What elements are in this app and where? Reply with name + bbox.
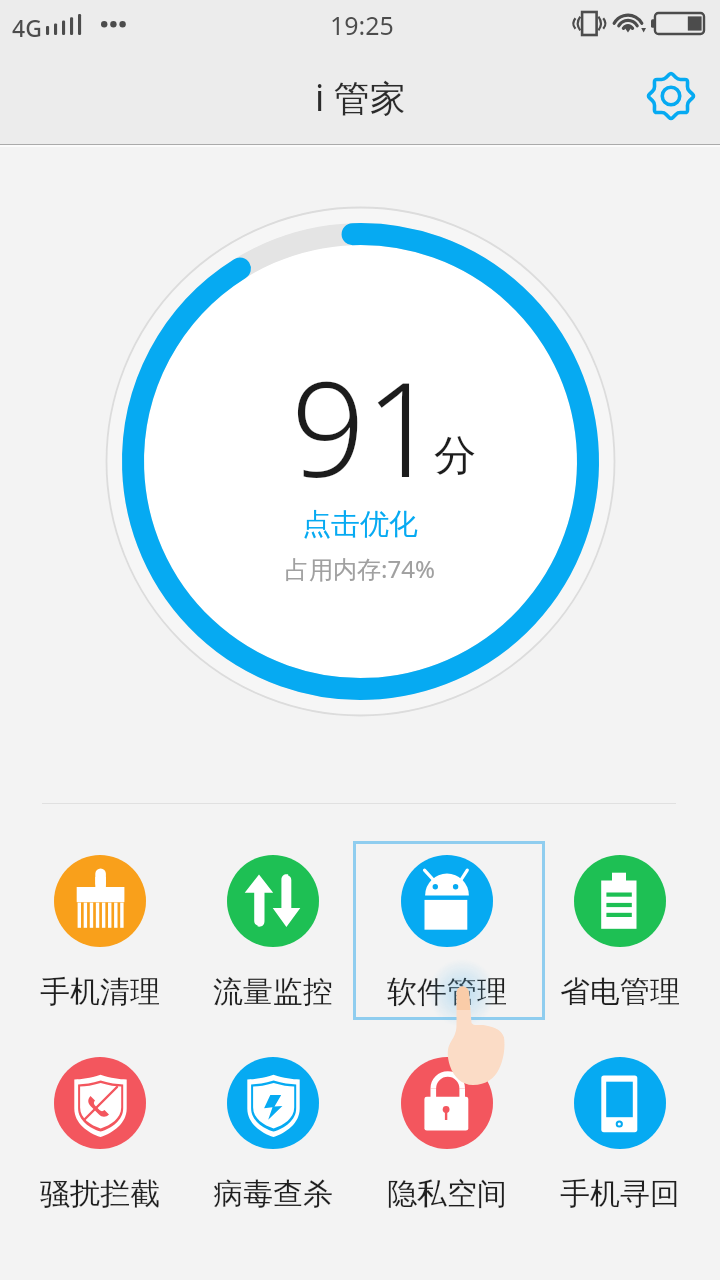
button[interactable]: Settings: [639, 64, 703, 128]
button[interactable]: 流量监控: [177, 841, 369, 1019]
button[interactable]: 91: [150, 360, 570, 600]
button[interactable]: 省电管理: [524, 841, 716, 1019]
staticText: 占用内存:74%: [150, 552, 570, 585]
staticText: 手机寻回: [560, 1175, 680, 1213]
staticText: 点击优化: [150, 506, 570, 543]
staticText: 软件管理: [387, 973, 507, 1011]
staticText: 骚扰拦截: [40, 1175, 160, 1213]
staticText: 4G: [12, 12, 42, 43]
staticText: 手机清理: [40, 973, 160, 1011]
button[interactable]: 病毒查杀: [177, 1043, 369, 1221]
button[interactable]: 软件管理: [351, 841, 543, 1019]
staticText: 分: [434, 430, 476, 483]
staticText: i 管家: [315, 73, 406, 122]
staticText: 省电管理: [560, 973, 680, 1011]
button[interactable]: 手机寻回: [524, 1043, 716, 1221]
staticText: 隐私空间: [387, 1175, 507, 1213]
button[interactable]: 隐私空间: [351, 1043, 543, 1221]
staticText: 病毒查杀: [213, 1175, 333, 1213]
staticText: 19:25: [330, 8, 394, 42]
staticText: 流量监控: [213, 973, 333, 1011]
button[interactable]: 骚扰拦截: [4, 1043, 196, 1221]
button[interactable]: 手机清理: [4, 841, 196, 1019]
staticText: 91: [291, 338, 440, 515]
